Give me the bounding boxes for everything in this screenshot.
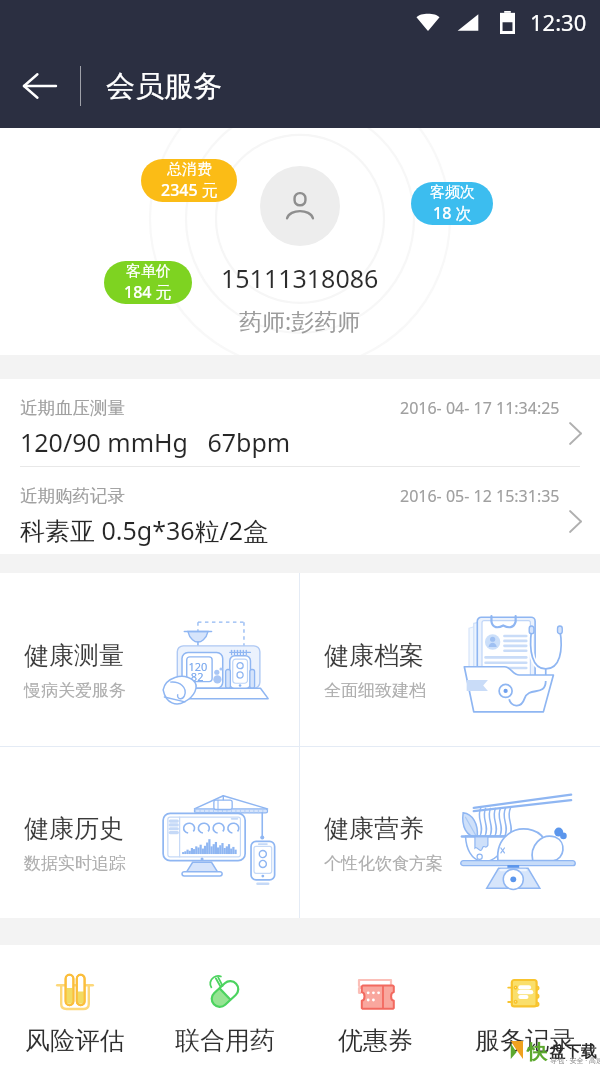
button[interactable]: 总消费 [141, 159, 237, 202]
button[interactable]: 优惠券 [300, 945, 450, 1061]
staticText: 近期血压测量 [20, 397, 125, 419]
button[interactable]: Back [0, 44, 80, 128]
button[interactable]: 客单价 [104, 261, 192, 304]
staticText: 12:30 [530, 7, 587, 37]
staticText: 总消费 [167, 160, 212, 179]
staticText: 慢病关爱服务 [24, 680, 126, 701]
staticText: 服务记录 [475, 1025, 575, 1056]
staticText: 2016- 05- 12 15:31:35 [400, 485, 560, 507]
staticText: 药师:彭药师 [239, 305, 361, 336]
staticText: 个性化饮食方案 [324, 853, 443, 874]
staticText: 优惠券 [338, 1025, 413, 1056]
button[interactable]: 风险评估 [0, 945, 150, 1061]
staticText: 健康档案 [324, 640, 424, 671]
staticText: 健康历史 [24, 813, 124, 844]
staticText: 客单价 [126, 262, 171, 281]
staticText: 快 [527, 1040, 547, 1065]
staticText: 导包 · 安全 · 高速 [550, 1056, 600, 1066]
staticText: 数据实时追踪 [24, 853, 126, 874]
staticText: 近期购药记录 [20, 485, 125, 507]
button[interactable]: 客频次 [411, 182, 493, 225]
button[interactable]: 健康档案 [300, 573, 599, 746]
button[interactable]: 联合用药 [150, 945, 300, 1061]
button[interactable]: 近期购药记录 [0, 467, 600, 554]
staticText: 科素亚 0.5g*36粒/2盒 [20, 513, 269, 547]
staticText: 客频次 [430, 183, 475, 202]
staticText: 2345 元 [161, 179, 218, 201]
staticText: 联合用药 [175, 1025, 275, 1056]
staticText: 184 元 [124, 281, 172, 303]
button[interactable]: 健康历史 [0, 747, 299, 918]
staticText: 健康测量 [24, 640, 124, 671]
button[interactable]: 健康测量 [0, 573, 299, 746]
button[interactable]: 健康营养 [300, 747, 599, 918]
staticText: 风险评估 [25, 1025, 125, 1056]
button[interactable]: 近期血压测量 [0, 379, 600, 466]
staticText: 健康营养 [324, 813, 424, 844]
button[interactable]: 服务记录 [450, 945, 600, 1061]
staticText: 15111318086 [221, 261, 379, 295]
staticText: 会员服务 [106, 68, 222, 105]
staticText: 18 次 [433, 202, 472, 224]
staticText: 全面细致建档 [324, 680, 426, 701]
staticText: 盘下载 [549, 1042, 597, 1062]
staticText: 2016- 04- 17 11:34:25 [400, 397, 560, 419]
staticText: 120/90 mmHg 67bpm [20, 425, 291, 459]
